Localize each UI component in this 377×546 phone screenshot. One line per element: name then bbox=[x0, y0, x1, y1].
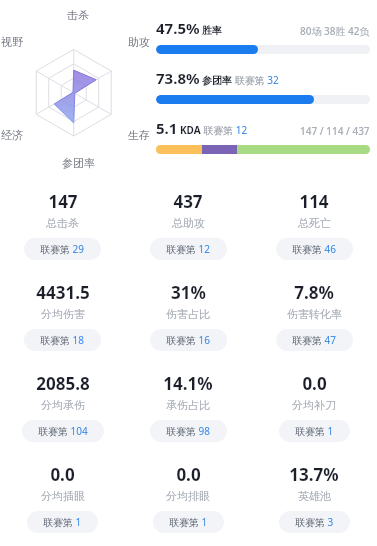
staticText: 14.1% bbox=[163, 372, 213, 395]
staticText: 总击杀 bbox=[46, 216, 79, 230]
button[interactable]: 31% bbox=[125, 271, 251, 362]
staticText: 联赛第 18 bbox=[40, 333, 85, 347]
staticText: 2085.8 bbox=[36, 372, 90, 395]
button[interactable]: 114 bbox=[251, 180, 377, 271]
staticText: 击杀 bbox=[67, 8, 89, 22]
staticText: 联赛第 104 bbox=[38, 424, 88, 438]
staticText: 31% bbox=[171, 281, 206, 304]
button[interactable]: 7.8% bbox=[251, 271, 377, 362]
staticText: 经济 bbox=[1, 128, 23, 142]
button[interactable]: 13.7% bbox=[251, 453, 377, 544]
button[interactable]: 437 bbox=[125, 180, 251, 271]
staticText: 分均承伤 bbox=[41, 398, 85, 412]
staticText: 114 bbox=[299, 190, 329, 213]
staticText: 联赛第 1 bbox=[43, 515, 82, 529]
staticText: 总死亡 bbox=[298, 216, 331, 230]
staticText: 147 / 114 / 437 bbox=[300, 124, 370, 138]
button[interactable]: 147 bbox=[0, 180, 125, 271]
staticText: 分均伤害 bbox=[41, 307, 85, 321]
staticText: 分均排眼 bbox=[166, 489, 210, 503]
staticText: 13.7% bbox=[289, 463, 339, 486]
staticText: 联赛第 12 bbox=[166, 242, 211, 256]
button[interactable]: 0.0 bbox=[0, 453, 125, 544]
staticText: 4431.5 bbox=[36, 281, 90, 304]
staticText: 联赛第 3 bbox=[295, 515, 334, 529]
button[interactable]: 14.1% bbox=[125, 362, 251, 453]
staticText: 生存 bbox=[128, 128, 150, 142]
staticText: 分均补刀 bbox=[292, 398, 336, 412]
staticText: 147 bbox=[48, 190, 78, 213]
staticText: 分均插眼 bbox=[41, 489, 85, 503]
staticText: 伤害占比 bbox=[166, 307, 210, 321]
button[interactable]: 0.0 bbox=[125, 453, 251, 544]
staticText: 助攻 bbox=[128, 35, 150, 49]
staticText: 47.5% 胜率 bbox=[156, 18, 223, 38]
staticText: 联赛第 46 bbox=[292, 242, 337, 256]
staticText: 437 bbox=[173, 190, 203, 213]
staticText: 联赛第 1 bbox=[169, 515, 208, 529]
button[interactable]: 0.0 bbox=[251, 362, 377, 453]
staticText: 5.1 KDA 联赛第 12 bbox=[156, 118, 248, 138]
button[interactable]: 4431.5 bbox=[0, 271, 125, 362]
staticText: 73.8% 参团率 联赛第 32 bbox=[156, 68, 279, 88]
button[interactable]: 2085.8 bbox=[0, 362, 125, 453]
staticText: 联赛第 98 bbox=[166, 424, 211, 438]
staticText: 承伤占比 bbox=[166, 398, 210, 412]
staticText: 英雄池 bbox=[298, 489, 331, 503]
staticText: 0.0 bbox=[302, 372, 327, 395]
staticText: 联赛第 47 bbox=[292, 333, 337, 347]
staticText: 总助攻 bbox=[172, 216, 205, 230]
staticText: 视野 bbox=[1, 35, 23, 49]
staticText: 7.8% bbox=[294, 281, 334, 304]
staticText: 联赛第 1 bbox=[295, 424, 334, 438]
staticText: 参团率 bbox=[62, 156, 95, 170]
staticText: 伤害转化率 bbox=[287, 307, 342, 321]
staticText: 联赛第 29 bbox=[40, 242, 85, 256]
staticText: 联赛第 16 bbox=[166, 333, 211, 347]
staticText: 0.0 bbox=[176, 463, 201, 486]
staticText: 0.0 bbox=[50, 463, 75, 486]
staticText: 80场 38胜 42负 bbox=[300, 24, 370, 38]
